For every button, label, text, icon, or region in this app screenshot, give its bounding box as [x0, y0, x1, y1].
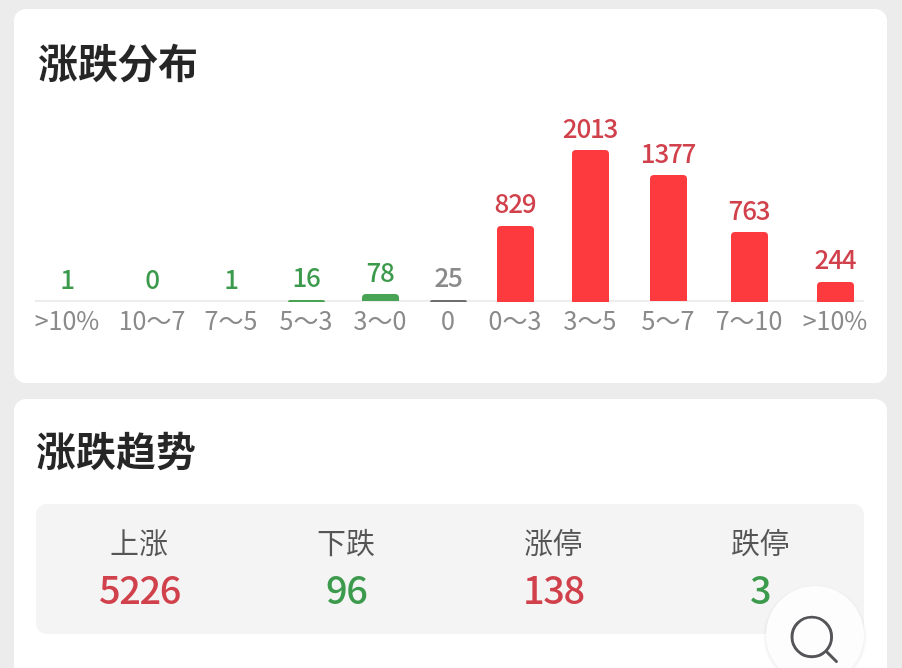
staticText: 0: [102, 259, 202, 297]
staticText: 2013: [540, 108, 640, 146]
staticText: 5226: [99, 560, 181, 615]
staticText: 96: [326, 560, 367, 615]
staticText: 5～3: [251, 301, 361, 337]
staticText: 0: [393, 301, 503, 337]
staticText: 下跌: [317, 520, 376, 562]
staticText: 0～3: [460, 301, 570, 337]
staticText: 25: [398, 257, 498, 295]
staticText: 16: [256, 257, 356, 295]
staticText: 3: [750, 560, 771, 615]
staticText: 10～7: [97, 301, 207, 337]
staticText: 1: [181, 259, 281, 297]
staticText: 7～10: [694, 301, 804, 337]
button[interactable]: 跌停: [657, 504, 864, 634]
staticText: 78: [330, 252, 430, 290]
button[interactable]: 上涨: [36, 504, 243, 634]
staticText: 上涨: [110, 520, 169, 562]
staticText: 涨跌趋势: [36, 420, 196, 478]
staticText: 3～0: [325, 301, 435, 337]
staticText: 7～5: [176, 301, 286, 337]
button[interactable]: 下跌: [243, 504, 450, 634]
staticText: 跌停: [731, 520, 790, 562]
button[interactable]: Search: [766, 586, 864, 668]
staticText: 763: [699, 190, 799, 228]
staticText: 1377: [618, 133, 718, 171]
staticText: 138: [523, 560, 584, 615]
button[interactable]: 涨停: [450, 504, 657, 634]
staticText: 244: [785, 239, 885, 277]
staticText: 涨停: [524, 520, 583, 562]
staticText: >10%: [14, 301, 122, 337]
staticText: 涨跌分布: [38, 32, 198, 90]
staticText: >10%: [780, 301, 887, 337]
staticText: 5～7: [613, 301, 723, 337]
staticText: 1: [17, 259, 117, 297]
staticText: 829: [465, 183, 565, 221]
staticText: 3～5: [535, 301, 645, 337]
